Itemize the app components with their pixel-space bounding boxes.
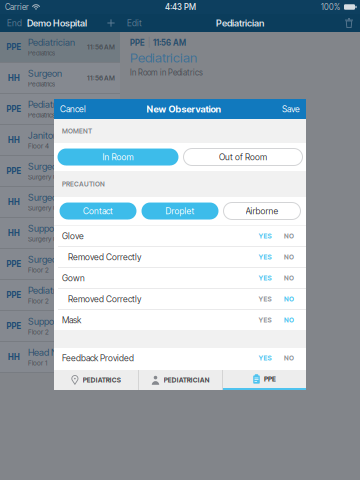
staticText: Surgeon xyxy=(28,161,62,172)
staticText: Surgery Unit xyxy=(28,235,65,243)
staticText: Surgeon xyxy=(28,254,62,265)
staticText: Support xyxy=(28,316,60,327)
button[interactable]: Feedback Provided xyxy=(54,348,306,368)
button[interactable]: PEDIATRICS xyxy=(54,370,138,390)
staticText: 11:54 AM xyxy=(87,167,115,175)
staticText: Pediatrician xyxy=(28,99,75,110)
button[interactable]: PPE xyxy=(0,94,120,125)
button[interactable]: Contact xyxy=(59,202,136,219)
button[interactable]: PPE xyxy=(0,156,120,187)
staticText: Floor 2 xyxy=(28,297,49,305)
staticText: Surgeon xyxy=(28,192,62,203)
button[interactable]: Add observation xyxy=(102,14,120,32)
staticText: | xyxy=(148,38,150,48)
staticText: PRECAUTION xyxy=(62,180,105,188)
staticText: NO xyxy=(284,316,294,324)
staticText: Airborne xyxy=(245,206,278,216)
button[interactable]: PPE xyxy=(0,280,120,311)
button[interactable]: PEDIATRICIAN xyxy=(139,370,222,390)
staticText: PPE xyxy=(6,104,21,114)
staticText: 11:54 AM xyxy=(87,198,115,206)
staticText: HH xyxy=(8,135,20,145)
staticText: Head Nurse xyxy=(28,347,75,358)
staticText: Floor 2 xyxy=(28,328,49,336)
staticText: NO xyxy=(284,232,294,240)
staticText: HH xyxy=(8,228,20,238)
staticText: Floor 2 xyxy=(28,266,49,274)
staticText: Surgery Unit xyxy=(28,204,65,212)
staticText: 11:56 AM xyxy=(87,74,115,82)
staticText: NO xyxy=(284,274,294,282)
staticText: Save xyxy=(282,104,300,114)
staticText: Contact xyxy=(83,206,113,216)
button[interactable]: Droplet xyxy=(141,202,218,219)
staticText: Floor 1 xyxy=(28,359,47,367)
staticText: Cancel xyxy=(60,104,86,114)
button[interactable]: HH xyxy=(0,187,120,218)
button[interactable]: Removed Correctly xyxy=(54,247,306,267)
button[interactable]: HH xyxy=(0,218,120,249)
staticText: NO xyxy=(284,354,294,362)
button[interactable]: Delete observation xyxy=(338,14,360,32)
button[interactable]: Cancel xyxy=(54,99,92,119)
staticText: YES xyxy=(258,316,271,324)
staticText: HH xyxy=(8,73,20,83)
staticText: Carrier xyxy=(5,2,29,12)
staticText: HH xyxy=(8,197,20,207)
staticText: PPE xyxy=(130,38,145,48)
staticText: Removed Correctly xyxy=(68,252,141,262)
button[interactable]: Gown xyxy=(54,268,306,288)
staticText: PEDIATRICIAN xyxy=(164,376,210,384)
staticText: Demo Hospital xyxy=(27,17,87,29)
button[interactable]: PPE xyxy=(223,370,306,390)
staticText: 11:56 AM xyxy=(87,43,115,51)
staticText: NO xyxy=(284,295,294,303)
staticText: Floor 4 xyxy=(28,142,49,150)
button[interactable]: PPE xyxy=(0,32,120,63)
staticText: Glove xyxy=(62,231,84,241)
button[interactable]: Airborne xyxy=(223,202,300,219)
button[interactable]: HH xyxy=(0,342,120,373)
staticText: Droplet xyxy=(165,206,194,216)
staticText: PPE xyxy=(264,375,276,383)
staticText: New Observation xyxy=(146,103,221,115)
button[interactable]: Edit xyxy=(120,14,149,32)
staticText: Pediatrics xyxy=(28,80,55,88)
staticText: 11:51 AM xyxy=(88,353,115,361)
staticText: PPE xyxy=(6,166,21,176)
staticText: Removed Correctly xyxy=(68,294,141,304)
staticText: Pediatrics xyxy=(28,111,55,119)
staticText: YES xyxy=(258,354,271,362)
staticText: Mask xyxy=(62,315,81,325)
button[interactable]: PPE xyxy=(0,249,120,280)
staticText: Surgery Unit xyxy=(28,173,65,181)
button[interactable]: Removed Correctly xyxy=(54,289,306,309)
staticText: YES xyxy=(258,253,271,261)
staticText: PEDIATRICS xyxy=(83,376,121,384)
staticText: Gown xyxy=(62,273,85,283)
staticText: 11:53 AM xyxy=(87,260,115,268)
staticText: HH xyxy=(8,352,20,362)
staticText: PPE xyxy=(6,259,21,269)
staticText: 4:43 PM xyxy=(165,2,196,12)
button[interactable]: HH xyxy=(0,63,120,94)
staticText: Pediatrician xyxy=(28,37,75,48)
staticText: YES xyxy=(258,232,271,240)
staticText: Pediatrician xyxy=(28,285,75,296)
button[interactable]: Save xyxy=(276,99,306,119)
staticText: Pediatrician xyxy=(216,17,264,29)
staticText: 100% xyxy=(321,2,340,12)
button[interactable]: Glove xyxy=(54,226,306,246)
staticText: Surgeon xyxy=(28,68,62,79)
button[interactable]: HH xyxy=(0,125,120,156)
staticText: Janitor xyxy=(28,130,56,141)
button[interactable]: End xyxy=(0,14,27,32)
button[interactable]: PPE xyxy=(0,311,120,342)
button[interactable]: In Room xyxy=(57,148,178,165)
staticText: 11:55 AM xyxy=(87,136,115,144)
button[interactable]: Out of Room xyxy=(183,148,302,165)
button[interactable]: Mask xyxy=(54,310,306,330)
